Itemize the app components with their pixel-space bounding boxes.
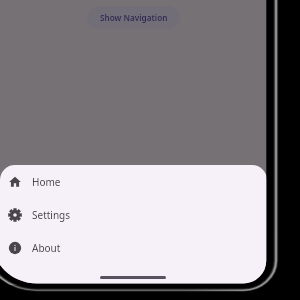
button[interactable]: Settings xyxy=(0,198,267,231)
other: Settings xyxy=(8,208,22,222)
staticText: Settings xyxy=(32,208,71,222)
button[interactable]: About xyxy=(0,231,267,264)
button[interactable]: Show Navigation xyxy=(87,6,180,29)
staticText: About xyxy=(32,241,61,255)
other: Home xyxy=(8,175,22,189)
staticText: Home xyxy=(32,175,61,189)
staticText: Show Navigation xyxy=(100,12,168,23)
button[interactable]: Home xyxy=(0,165,267,198)
other: About xyxy=(8,241,22,255)
